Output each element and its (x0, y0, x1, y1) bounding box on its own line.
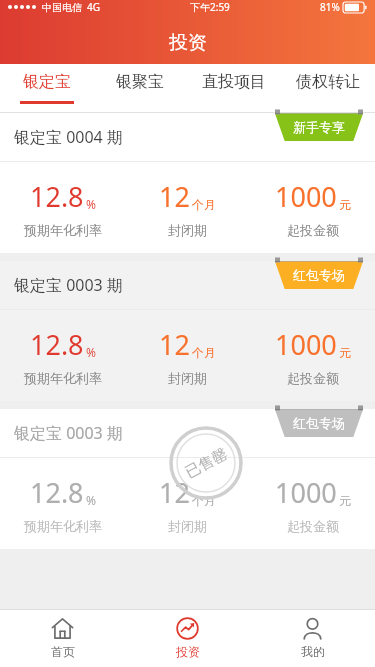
staticText: 元 (339, 345, 351, 360)
staticText: 81% (320, 0, 340, 14)
button[interactable]: 银定宝 0003 期 (0, 409, 375, 549)
staticText: 封闭期 (168, 370, 207, 386)
button[interactable]: 银定宝 (0, 64, 93, 112)
staticText: 投资 (176, 644, 200, 659)
staticText: 12.8 (30, 178, 84, 215)
staticText: 银定宝 (23, 72, 71, 92)
staticText: 直投项目 (202, 72, 266, 92)
staticText: 投资 (169, 31, 207, 55)
staticText: 元 (339, 493, 351, 508)
staticText: 起投金额 (287, 518, 339, 534)
staticText: % (86, 196, 96, 212)
staticText: 1000 (275, 326, 337, 363)
staticText: % (86, 492, 96, 508)
staticText: 12 (159, 178, 190, 215)
staticText: 中国电信 (42, 1, 82, 14)
button[interactable]: 银定宝 0004 期 (0, 113, 375, 253)
staticText: 1000 (275, 178, 337, 215)
staticText: 预期年化利率 (24, 370, 102, 386)
button[interactable]: 银聚宝 (93, 64, 187, 112)
staticText: 个月 (192, 345, 216, 360)
staticText: 银聚宝 (116, 72, 164, 92)
button[interactable]: 投资 (125, 609, 250, 667)
button[interactable]: 首页 (0, 609, 125, 667)
staticText: 红包专场 (293, 267, 345, 283)
staticText: 1000 (275, 474, 337, 511)
staticText: 首页 (51, 644, 75, 659)
staticText: 新手专享 (293, 119, 345, 135)
button[interactable]: 银定宝 0003 期 (0, 261, 375, 401)
staticText: 债权转让 (296, 72, 360, 92)
staticText: 银定宝 0003 期 (14, 274, 123, 296)
staticText: 起投金额 (287, 370, 339, 386)
staticText: 个月 (192, 197, 216, 212)
staticText: 12.8 (30, 326, 84, 363)
staticText: % (86, 344, 96, 360)
staticText: 封闭期 (168, 518, 207, 534)
button[interactable]: 直投项目 (187, 64, 281, 112)
staticText: 个月 (192, 493, 216, 508)
staticText: 封闭期 (168, 222, 207, 238)
staticText: 银定宝 0003 期 (14, 422, 123, 444)
staticText: 12 (159, 326, 190, 363)
staticText: 银定宝 0004 期 (14, 126, 123, 148)
staticText: 12 (159, 474, 190, 511)
staticText: 已售罄 (182, 444, 231, 482)
button[interactable]: 我的 (250, 609, 375, 667)
staticText: 预期年化利率 (24, 518, 102, 534)
staticText: 12.8 (30, 474, 84, 511)
button[interactable]: 债权转让 (281, 64, 375, 112)
staticText: 元 (339, 197, 351, 212)
staticText: 起投金额 (287, 222, 339, 238)
staticText: 4G (87, 0, 100, 14)
staticText: 下午2:59 (190, 0, 230, 14)
staticText: 预期年化利率 (24, 222, 102, 238)
staticText: 红包专场 (293, 415, 345, 431)
staticText: 我的 (301, 644, 325, 659)
